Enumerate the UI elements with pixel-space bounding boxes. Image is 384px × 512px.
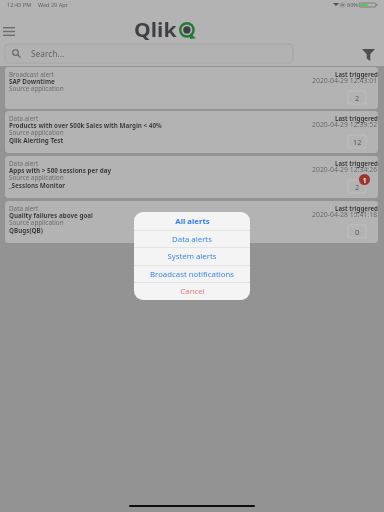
button[interactable]: Open navigation menu xyxy=(0,22,18,41)
staticText: 12 xyxy=(353,137,362,147)
staticText: SAP Downtime xyxy=(9,77,55,86)
staticText: 2 xyxy=(355,93,360,103)
staticText: Source application xyxy=(9,218,64,227)
staticText: QBugs(QB) xyxy=(9,226,43,235)
button[interactable]: Data alerts xyxy=(134,231,250,247)
staticText: Last triggered xyxy=(335,159,378,167)
staticText: Quality failures above goal xyxy=(9,211,93,220)
staticText: Broadcast alert xyxy=(9,70,54,79)
staticText: Last triggered xyxy=(335,114,378,122)
staticText: 0 xyxy=(355,227,360,237)
staticText: Data alerts xyxy=(172,234,212,245)
button[interactable]: System alerts xyxy=(134,248,250,265)
staticText: 2020-04-29 12:39:52 xyxy=(312,120,378,129)
staticText: Products with over 500k Sales with Margi… xyxy=(9,121,162,130)
staticText: Data alert xyxy=(9,204,39,213)
button[interactable]: Search... xyxy=(5,44,293,63)
staticText: 60% xyxy=(347,1,358,8)
staticText: Broadcast notifications xyxy=(150,269,234,280)
button[interactable]: Broadcast alert xyxy=(5,67,378,109)
button[interactable]: All alerts xyxy=(134,212,250,230)
staticText: 2020-04-28 15:41:18 xyxy=(312,210,378,219)
staticText: 2 xyxy=(355,182,360,192)
button[interactable]: Cancel xyxy=(134,283,250,300)
button[interactable]: 2 xyxy=(348,91,366,104)
staticText: Source application xyxy=(9,84,64,93)
button[interactable]: Data alert xyxy=(5,201,378,243)
staticText: Apps with > 500 sessions per day xyxy=(9,166,112,175)
staticText: 12:43 PM xyxy=(7,1,32,9)
staticText: 2020-04-29 12:34:26 xyxy=(312,165,378,174)
staticText: _Sessions Monitor xyxy=(9,181,66,190)
button[interactable]: Data alert xyxy=(5,156,378,198)
staticText: Data alert xyxy=(9,159,39,168)
staticText: Last triggered xyxy=(335,204,378,212)
staticText: Data alert xyxy=(9,114,39,123)
staticText: Last triggered xyxy=(335,70,378,78)
button[interactable]: Filter alerts xyxy=(359,45,378,64)
button[interactable]: Dismiss menu xyxy=(0,0,384,512)
staticText: Qlik xyxy=(134,16,177,42)
staticText: Source application xyxy=(9,173,64,182)
staticText: Source application xyxy=(9,128,64,137)
staticText: 2020-04-29 12:43:01 xyxy=(312,76,378,85)
button[interactable]: 0 xyxy=(348,225,366,238)
button[interactable]: Broadcast notifications xyxy=(134,266,250,282)
staticText: Qlik Alerting Test xyxy=(9,136,64,145)
staticText: Cancel xyxy=(180,286,205,297)
staticText: Search... xyxy=(31,48,65,59)
staticText: System alerts xyxy=(167,251,217,262)
staticText: All alerts xyxy=(175,216,210,227)
staticText: 1 xyxy=(363,176,367,184)
button[interactable]: Data alert xyxy=(5,111,378,153)
button[interactable]: 12 xyxy=(348,135,366,148)
staticText: Wed 29 Apr xyxy=(38,1,68,8)
button[interactable]: 2 xyxy=(348,180,366,193)
